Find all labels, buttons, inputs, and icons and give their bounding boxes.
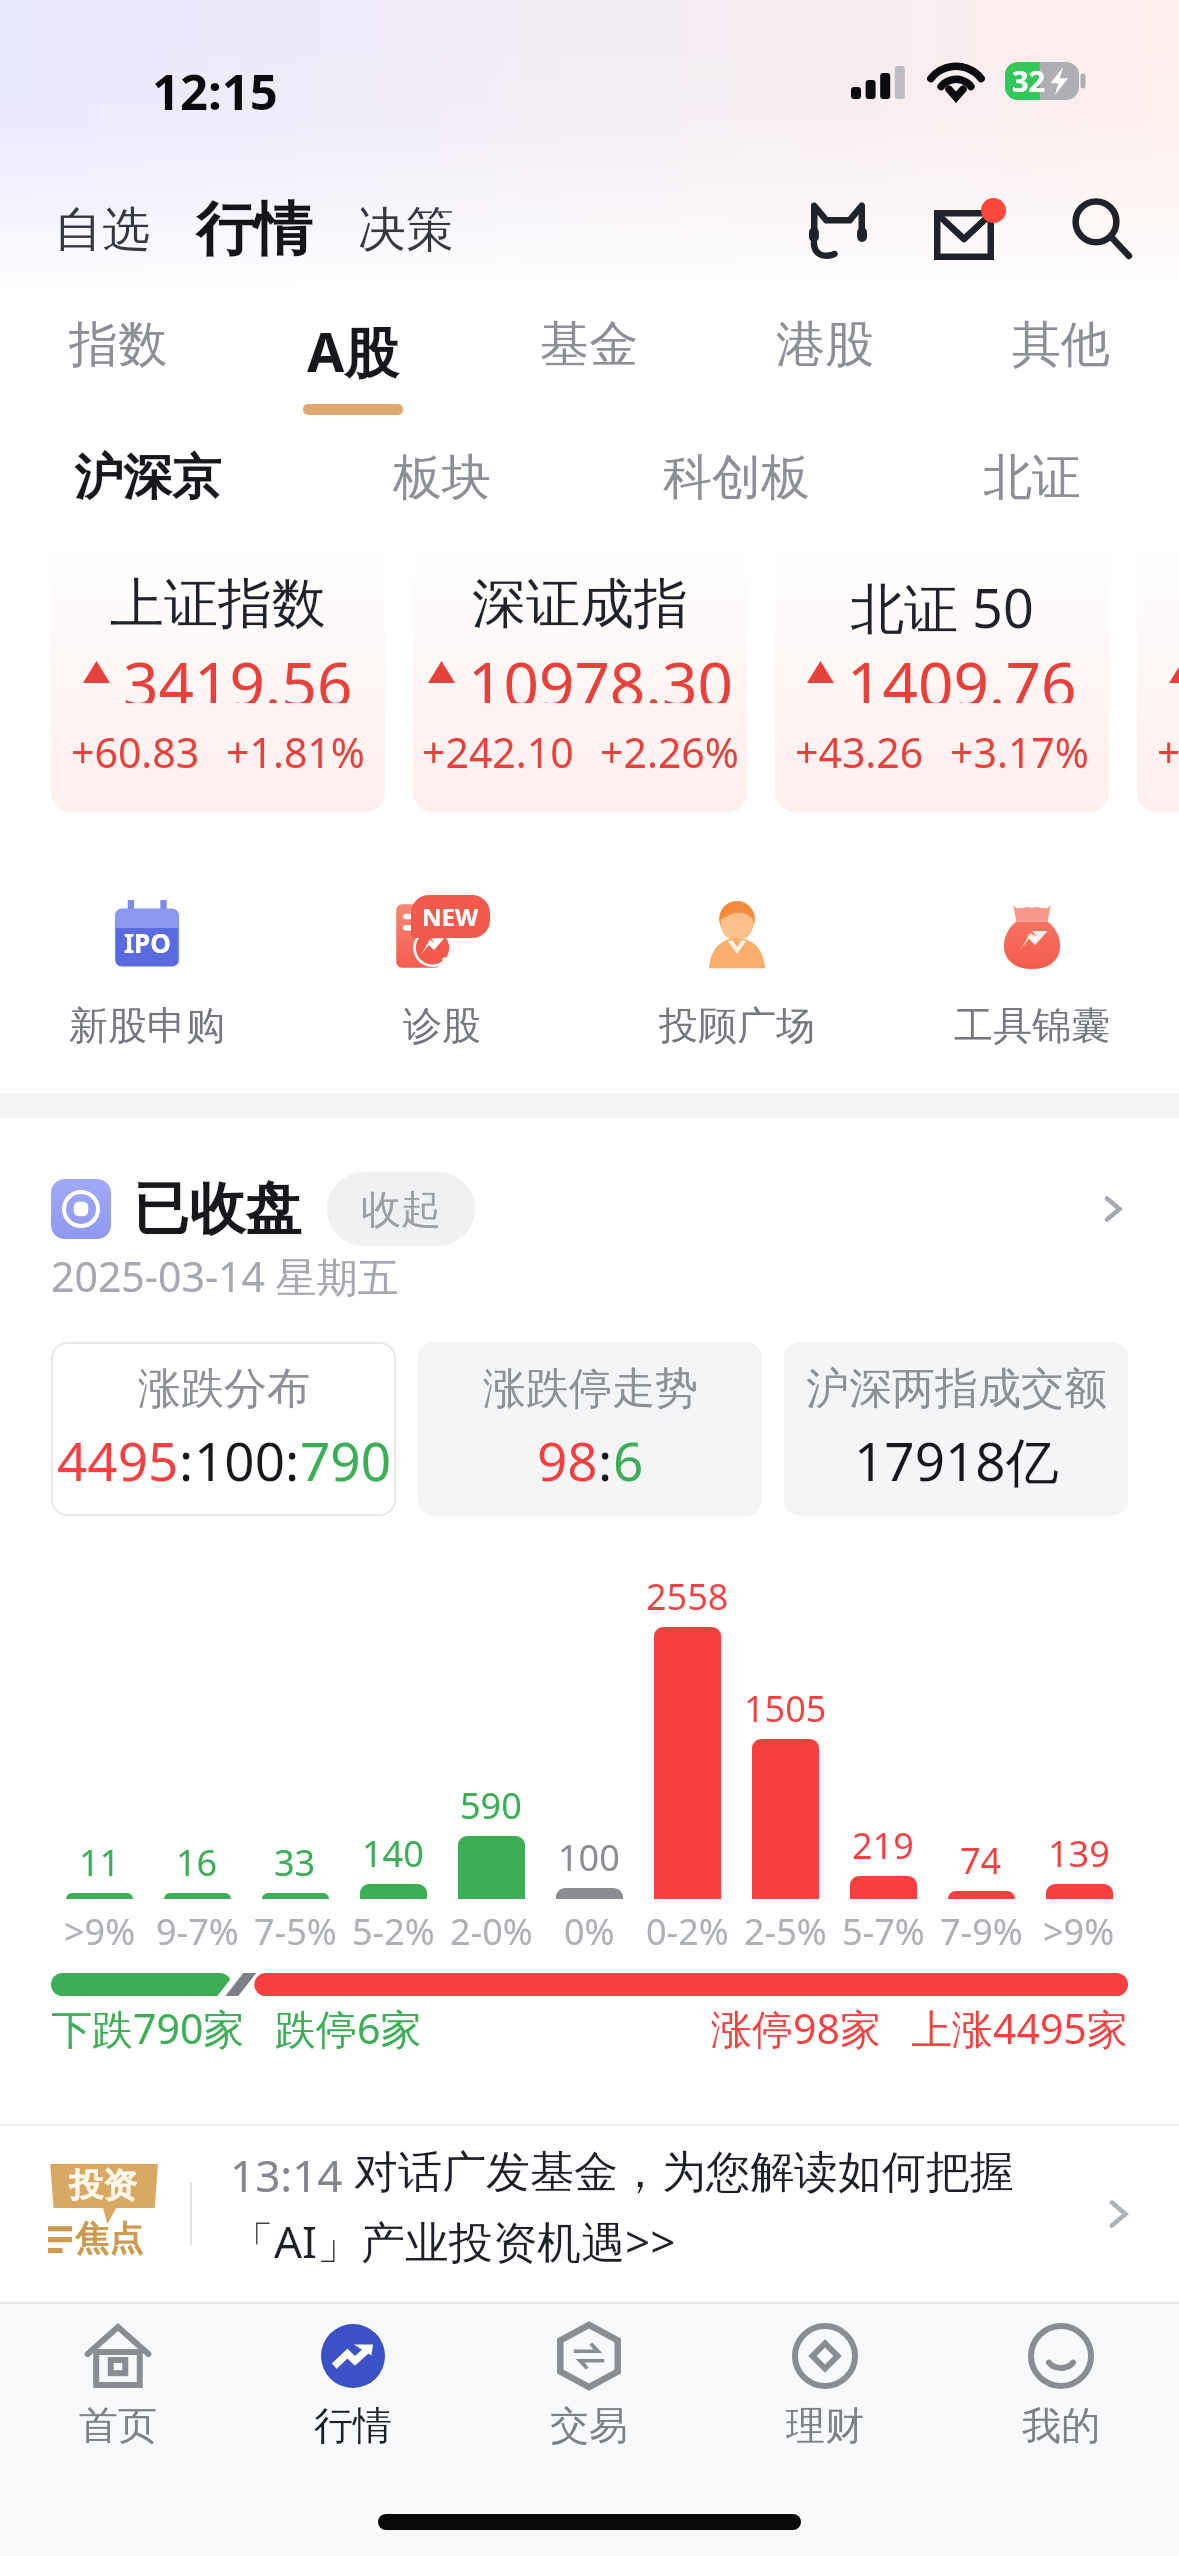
button[interactable]: 基金 (471, 293, 707, 428)
button[interactable]: 工具锦囊 (884, 895, 1179, 1050)
staticText: +60.83 (71, 724, 200, 774)
staticText: 其他 (1012, 314, 1110, 376)
staticText: 2558 (646, 1572, 729, 1621)
staticText: 工具锦囊 (954, 1001, 1110, 1050)
staticText: 科创板 (663, 447, 810, 509)
button[interactable]: 涨跌停走势 (418, 1342, 762, 1516)
staticText: A股 (307, 314, 399, 388)
staticText: 1409.76 (847, 641, 1077, 703)
staticText: 10978.30 (468, 641, 733, 703)
button[interactable]: 指数 (0, 293, 235, 428)
staticText: 0% (564, 1907, 615, 1956)
staticText: 北证 (983, 447, 1081, 509)
button[interactable]: 行情 (190, 191, 318, 268)
button[interactable]: 行情 (235, 2304, 471, 2450)
staticText: 5-7% (842, 1907, 925, 1956)
staticText: 2-5% (744, 1907, 827, 1956)
staticText: 16 (176, 1838, 218, 1887)
staticText: NEW (422, 900, 479, 933)
button[interactable]: 沪深京 (0, 422, 294, 534)
staticText: +3.17% (950, 724, 1089, 774)
staticText: 2-0% (450, 1907, 533, 1956)
staticText: 「AI」产业投资机遇>> (230, 2211, 676, 2271)
staticText: 北证 50 (850, 570, 1034, 636)
button[interactable]: 科创板 (589, 422, 884, 534)
button[interactable]: 投顾广场 (589, 895, 884, 1050)
staticText: 对话广发基金，为您解读如何把握 (354, 2145, 1014, 2200)
button[interactable]: IPO (0, 895, 294, 1050)
button[interactable]: 投资 (0, 2126, 1179, 2302)
button[interactable]: 港股 (707, 293, 943, 428)
button[interactable]: 理财 (707, 2304, 943, 2450)
staticText: 32 (1012, 61, 1046, 99)
staticText: 深证成指 (472, 570, 688, 636)
staticText: +2.26% (600, 724, 739, 774)
staticText: 新股申购 (69, 1001, 225, 1050)
staticText: 自选 (54, 200, 150, 260)
button[interactable]: NEW (294, 895, 589, 1050)
staticText: 诊股 (403, 1001, 481, 1050)
button[interactable]: A股 (235, 293, 471, 428)
staticText: 理财 (786, 2401, 864, 2450)
button[interactable]: 创业板指 (1137, 540, 1179, 812)
staticText: 790 (300, 1424, 391, 1496)
staticText: +1.81% (226, 724, 365, 774)
staticText: 已收盘 (133, 1174, 301, 1245)
staticText: 5-2% (352, 1907, 435, 1956)
button[interactable]: 我的 (943, 2304, 1179, 2450)
button[interactable]: 深证成指 (413, 540, 747, 812)
staticText: 4495 (57, 1424, 179, 1496)
button[interactable]: 已收盘 (51, 1172, 1128, 1246)
button[interactable]: 上证指数 (51, 540, 385, 812)
staticText: 沪深两指成交额 (806, 1362, 1107, 1416)
staticText: 基金 (540, 314, 638, 376)
staticText: 涨停98家 (711, 2000, 881, 2056)
staticText: 6 (613, 1424, 644, 1496)
staticText: 140 (362, 1829, 424, 1878)
staticText: 收起 (361, 1184, 441, 1234)
button[interactable]: Search (1050, 177, 1154, 281)
staticText: 3419.56 (123, 641, 353, 703)
button[interactable]: 收起 (327, 1172, 475, 1246)
staticText: 7-9% (940, 1907, 1023, 1956)
button[interactable]: 其他 (943, 293, 1179, 428)
button[interactable]: 交易 (471, 2304, 707, 2450)
staticText: 219 (852, 1821, 914, 1870)
button[interactable]: 涨跌分布 (51, 1342, 396, 1516)
staticText: 74 (960, 1836, 1002, 1885)
staticText: : (598, 1424, 613, 1496)
button[interactable]: 决策 (352, 192, 460, 268)
staticText: 沪深京 (74, 447, 221, 509)
staticText: 1505 (744, 1684, 827, 1733)
button[interactable]: 北证 (884, 422, 1179, 534)
staticText: 行情 (314, 2401, 392, 2450)
staticText: 7-5% (254, 1907, 337, 1956)
button[interactable]: 自选 (48, 192, 156, 268)
staticText: 33 (274, 1838, 316, 1887)
staticText: +43.26 (795, 724, 924, 774)
staticText: 涨跌分布 (138, 1362, 310, 1416)
staticText: : (285, 1424, 300, 1496)
button[interactable]: 首页 (0, 2304, 235, 2450)
staticText: IPO (124, 925, 171, 960)
button[interactable]: 板块 (294, 422, 589, 534)
staticText: 139 (1048, 1829, 1110, 1878)
staticText: 2025-03-14 星期五 (51, 1248, 399, 1304)
staticText: 100 (558, 1833, 620, 1882)
staticText: 12:15 (152, 58, 278, 125)
staticText: 100 (194, 1424, 285, 1496)
button[interactable]: 北证 50 (775, 540, 1109, 812)
button[interactable]: Messages (918, 177, 1022, 281)
staticText: 9-7% (156, 1907, 239, 1956)
staticText: 0-2% (646, 1907, 729, 1956)
staticText: 焦点 (75, 2217, 143, 2260)
staticText: 交易 (550, 2401, 628, 2450)
staticText: >9% (64, 1907, 136, 1956)
button[interactable]: 沪深两指成交额 (784, 1342, 1128, 1516)
staticText: : (179, 1424, 194, 1496)
staticText: 决策 (358, 200, 454, 260)
button[interactable]: Customer service (786, 177, 890, 281)
staticText: 投资 (69, 2164, 137, 2207)
staticText: 上证指数 (110, 570, 326, 636)
staticText: 17918亿 (854, 1424, 1059, 1496)
